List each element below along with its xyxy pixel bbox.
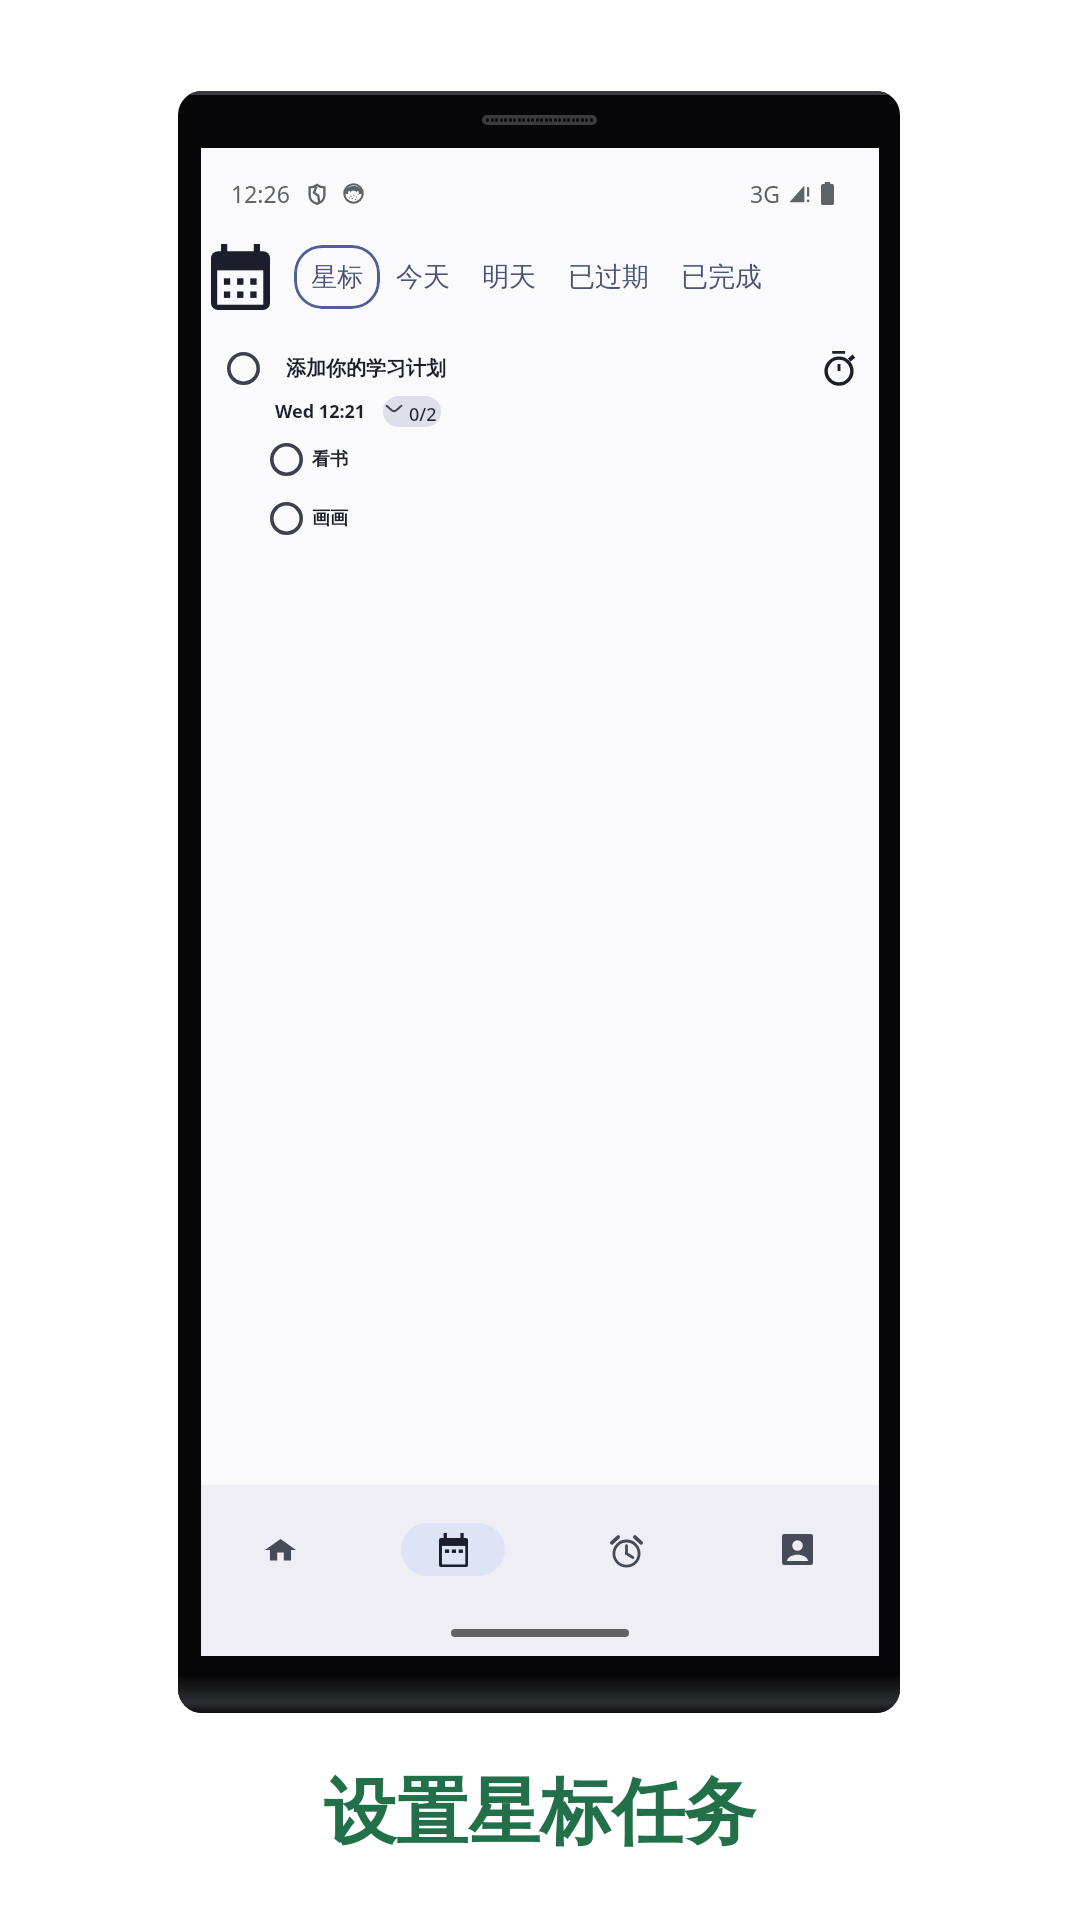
staticText: 12:26 <box>231 178 290 209</box>
staticText: 已过期 <box>568 260 649 294</box>
staticText: 设置星标任务 <box>324 1768 756 1859</box>
button[interactable]: 已完成 <box>665 245 778 309</box>
button[interactable]: 添加你的学习计划 <box>201 343 879 393</box>
staticText: 0/2 <box>409 402 437 427</box>
button[interactable]: 画画 <box>260 497 364 539</box>
staticText: 星标 <box>311 261 363 294</box>
button[interactable]: Alarm <box>574 1523 678 1576</box>
button[interactable]: 今天 <box>380 245 466 309</box>
button[interactable]: Profile <box>745 1523 849 1576</box>
button[interactable]: Home <box>228 1523 332 1576</box>
staticText: 今天 <box>396 260 450 294</box>
button[interactable]: Timer <box>819 348 859 388</box>
button[interactable]: 明天 <box>466 245 552 309</box>
button[interactable]: Calendar <box>401 1523 505 1576</box>
staticText: 3G <box>750 178 780 209</box>
button[interactable]: 0/2 <box>383 396 441 427</box>
staticText: 已完成 <box>681 260 762 294</box>
staticText: Wed 12:21 <box>275 399 366 424</box>
staticText: 添加你的学习计划 <box>286 356 446 381</box>
staticText: 看书 <box>312 448 348 471</box>
button[interactable]: 已过期 <box>552 245 665 309</box>
button[interactable]: Calendar <box>211 244 270 310</box>
staticText: 画画 <box>312 507 348 530</box>
button[interactable]: 星标 <box>294 245 380 309</box>
button[interactable]: 看书 <box>260 438 364 480</box>
staticText: 明天 <box>482 260 536 294</box>
